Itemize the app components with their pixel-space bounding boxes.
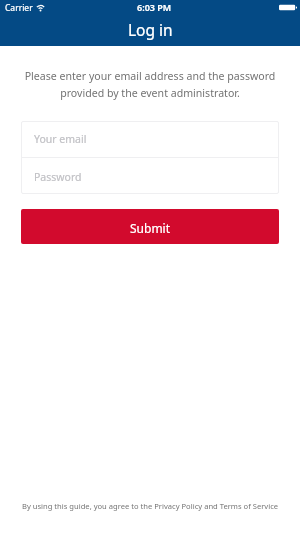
other: Wi-Fi signal	[36, 4, 45, 12]
staticText: Carrier	[5, 2, 33, 14]
button[interactable]: Password	[21, 158, 279, 194]
staticText: Please enter your email address and the …	[14, 69, 286, 100]
other: Battery full	[279, 4, 297, 11]
staticText: Password	[34, 170, 82, 184]
button[interactable]: Your email	[21, 121, 279, 157]
staticText: 6:03 PM	[137, 1, 172, 13]
button[interactable]: By using this guide, you agree to the Pr…	[0, 499, 300, 513]
staticText: Log in	[128, 19, 173, 40]
staticText: Your email	[34, 132, 87, 146]
staticText: By using this guide, you agree to the Pr…	[0, 501, 300, 511]
button[interactable]: Submit	[21, 209, 279, 244]
staticText: Submit	[130, 220, 171, 236]
